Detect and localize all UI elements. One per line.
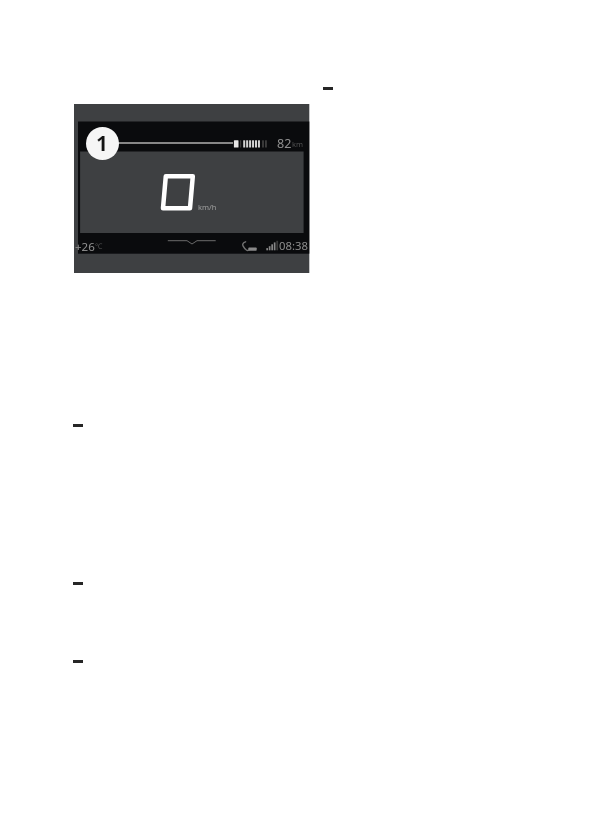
staticText: km bbox=[292, 139, 304, 149]
staticText: 08:38 bbox=[279, 238, 308, 253]
button[interactable]: Instrument cluster display figure bbox=[74, 104, 309, 273]
staticText: 82 bbox=[277, 135, 292, 152]
staticText: +26 bbox=[75, 239, 95, 255]
button[interactable]: Callout 1 bbox=[86, 127, 119, 160]
staticText: 1 bbox=[96, 129, 109, 158]
staticText: km/h bbox=[198, 202, 217, 212]
staticText: ℃ bbox=[95, 241, 103, 251]
